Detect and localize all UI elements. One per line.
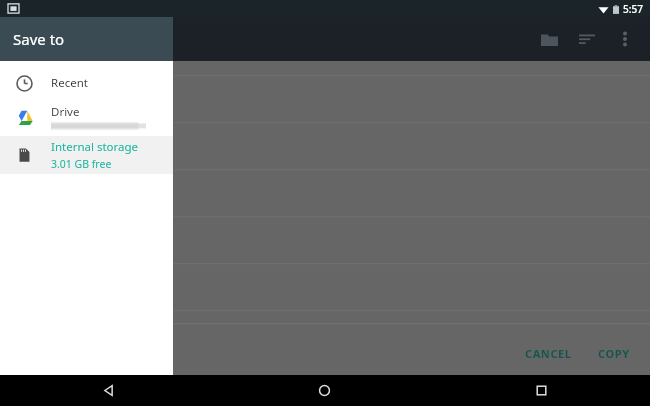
button[interactable]: Recent apps (433, 375, 650, 406)
button[interactable]: Recent (0, 68, 173, 98)
button[interactable]: Back (0, 375, 216, 406)
staticText: CANCEL (525, 346, 572, 361)
staticText: COPY (598, 346, 630, 361)
button[interactable]: Internal storage (0, 136, 173, 174)
button[interactable]: Drive (0, 98, 173, 136)
staticText: 3.01 GB free (51, 157, 112, 171)
button[interactable]: More options (606, 20, 644, 58)
button[interactable]: COPY (590, 340, 638, 367)
staticText: Internal storage (51, 139, 139, 155)
button[interactable]: Sort (568, 20, 606, 58)
button[interactable]: CANCEL (517, 340, 580, 367)
button[interactable]: New folder (530, 20, 568, 58)
staticText: Recent (51, 75, 88, 91)
staticText: 5:57 (623, 2, 643, 16)
staticText: Save to (13, 29, 65, 49)
staticText: Drive (51, 104, 80, 120)
button[interactable]: Home (216, 375, 433, 406)
